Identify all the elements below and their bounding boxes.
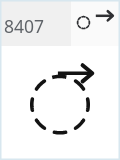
staticText: 8407 <box>4 14 45 38</box>
